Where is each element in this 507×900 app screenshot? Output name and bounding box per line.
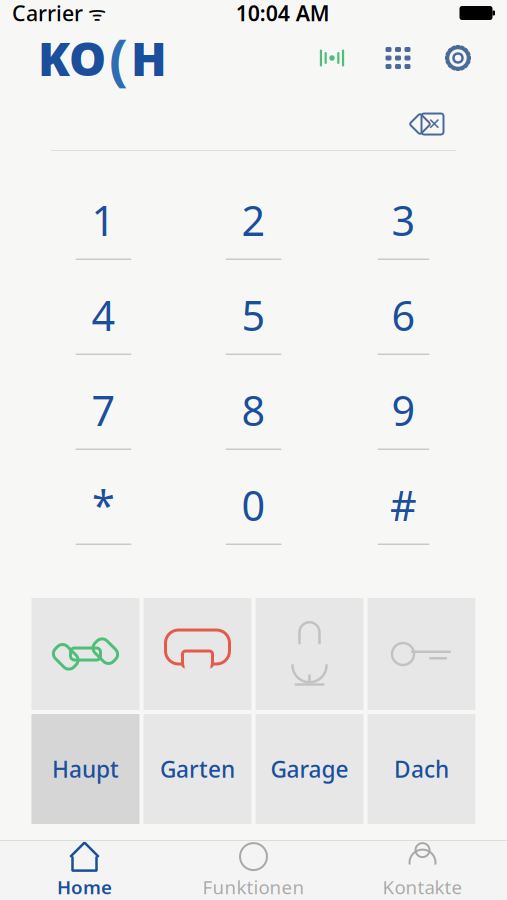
button[interactable]: 1 bbox=[28, 165, 178, 260]
staticText: 5 bbox=[241, 288, 265, 342]
button[interactable]: Garten bbox=[143, 714, 251, 824]
button[interactable]: * bbox=[28, 450, 178, 545]
staticText: 0 bbox=[241, 478, 265, 532]
button[interactable]: # bbox=[328, 450, 478, 545]
button[interactable]: 0 bbox=[178, 450, 328, 545]
staticText: 4 bbox=[91, 288, 115, 342]
button[interactable]: Tür öffnen bbox=[367, 598, 475, 710]
staticText: Home bbox=[57, 875, 112, 899]
button[interactable]: 9 bbox=[328, 355, 478, 450]
staticText: Garage bbox=[270, 754, 348, 784]
button[interactable]: Mikrofon bbox=[255, 598, 363, 710]
button[interactable]: 5 bbox=[178, 260, 328, 355]
button[interactable]: 4 bbox=[28, 260, 178, 355]
button[interactable]: Verbindung bbox=[305, 39, 359, 77]
staticText: Carrier bbox=[12, 0, 83, 27]
staticText: 7 bbox=[91, 383, 115, 437]
button[interactable]: Dach bbox=[367, 714, 475, 824]
staticText: 3 bbox=[391, 193, 415, 247]
staticText: H bbox=[131, 27, 167, 89]
staticText: ᯤ bbox=[83, 0, 106, 26]
button[interactable]: Einstellungen bbox=[437, 37, 479, 79]
button[interactable]: 8 bbox=[178, 355, 328, 450]
staticText: 1 bbox=[91, 193, 115, 247]
staticText: 9 bbox=[391, 383, 415, 437]
staticText: * bbox=[92, 478, 115, 532]
button[interactable]: Haupt bbox=[31, 714, 139, 824]
staticText: KO bbox=[38, 27, 106, 89]
button[interactable]: Löschen bbox=[399, 106, 457, 142]
staticText: 8 bbox=[241, 383, 265, 437]
button[interactable]: Home bbox=[0, 841, 169, 900]
staticText: 2 bbox=[241, 193, 265, 247]
button[interactable]: 7 bbox=[28, 355, 178, 450]
staticText: Dach bbox=[394, 754, 449, 784]
button[interactable]: Funktionen bbox=[169, 841, 338, 900]
staticText: ( bbox=[109, 21, 128, 95]
button[interactable]: Kontakte bbox=[338, 841, 507, 900]
staticText: ✕ bbox=[427, 115, 440, 133]
staticText: 6 bbox=[391, 288, 415, 342]
button[interactable]: Garage bbox=[255, 714, 363, 824]
button[interactable]: 2 bbox=[178, 165, 328, 260]
button[interactable]: 3 bbox=[328, 165, 478, 260]
staticText: 10:04 AM bbox=[236, 0, 330, 27]
button[interactable]: Tastenfeld bbox=[377, 38, 419, 78]
staticText: # bbox=[390, 478, 417, 532]
staticText: Funktionen bbox=[202, 875, 304, 899]
button[interactable]: Anruf annehmen bbox=[31, 598, 139, 710]
button[interactable]: Auflegen bbox=[143, 598, 251, 710]
staticText: Haupt bbox=[52, 754, 119, 784]
button[interactable]: 6 bbox=[328, 260, 478, 355]
staticText: Kontakte bbox=[382, 875, 462, 899]
staticText: Garten bbox=[160, 754, 235, 784]
